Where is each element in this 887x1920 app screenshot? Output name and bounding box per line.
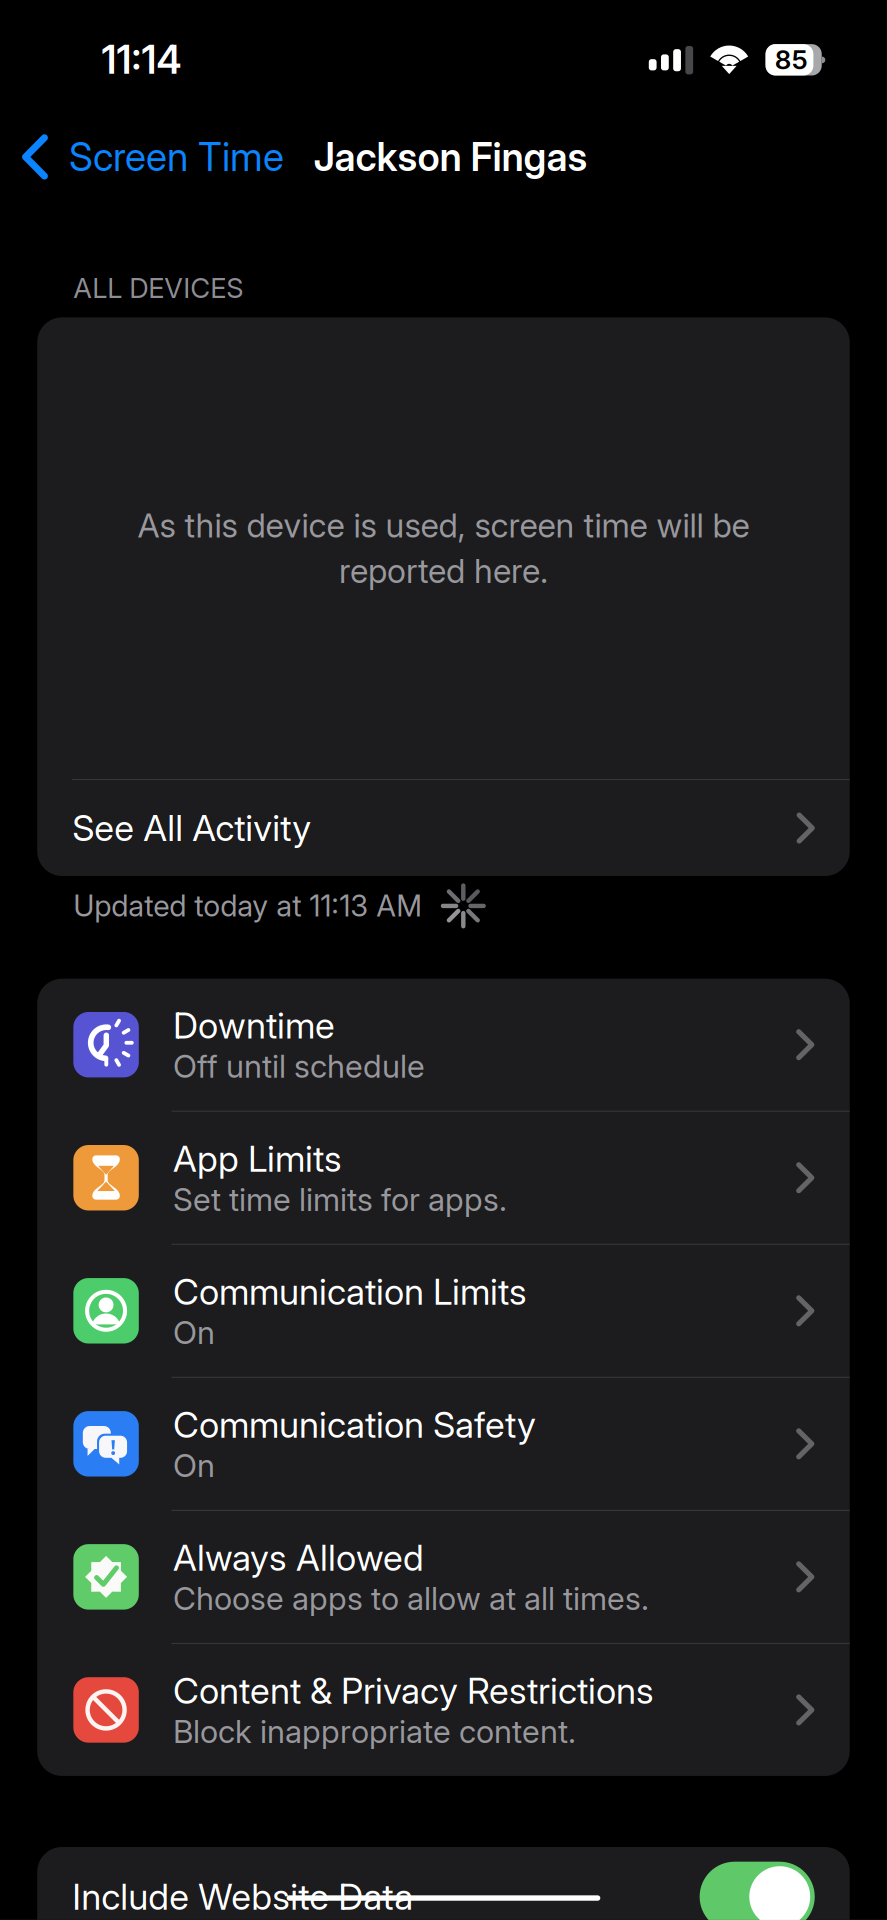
staticText: Content & Privacy Restrictions bbox=[173, 1669, 654, 1712]
staticText: See All Activity bbox=[72, 806, 311, 850]
button[interactable]: Include Website Data bbox=[37, 1847, 850, 1920]
button[interactable]: See All Activity bbox=[37, 780, 850, 876]
staticText: Block inappropriate content. bbox=[173, 1712, 576, 1751]
staticText: Screen Time bbox=[69, 134, 284, 180]
staticText: Set time limits for apps. bbox=[173, 1180, 507, 1218]
staticText: Choose apps to allow at all times. bbox=[173, 1579, 649, 1618]
staticText: Updated today at 11:13 AM bbox=[73, 888, 422, 923]
button[interactable]: Communication Limits bbox=[37, 1245, 850, 1377]
staticText: reported here. bbox=[339, 551, 548, 591]
button[interactable]: Always Allowed bbox=[37, 1511, 850, 1643]
staticText: Communication Safety bbox=[173, 1403, 536, 1446]
staticText: 11:14 bbox=[102, 36, 182, 83]
staticText: Jackson Fingas bbox=[313, 134, 587, 180]
button[interactable]: App Limits bbox=[37, 1112, 850, 1244]
button[interactable]: Communication Safety bbox=[37, 1378, 850, 1510]
staticText: On bbox=[173, 1446, 215, 1485]
staticText: Always Allowed bbox=[173, 1536, 424, 1579]
staticText: On bbox=[173, 1313, 215, 1351]
staticText: ALL DEVICES bbox=[73, 271, 243, 304]
staticText: Communication Limits bbox=[173, 1270, 527, 1313]
button[interactable]: Content & Privacy Restrictions bbox=[37, 1644, 850, 1776]
staticText: As this device is used, screen time will… bbox=[137, 505, 749, 545]
staticText: Include Website Data bbox=[72, 1875, 413, 1918]
button[interactable]: Screen Time bbox=[0, 116, 291, 198]
staticText: Downtime bbox=[173, 1004, 335, 1047]
button[interactable]: Downtime bbox=[37, 979, 850, 1111]
staticText: Off until schedule bbox=[173, 1047, 425, 1085]
staticText: App Limits bbox=[173, 1137, 342, 1180]
staticText: 85 bbox=[775, 44, 808, 76]
